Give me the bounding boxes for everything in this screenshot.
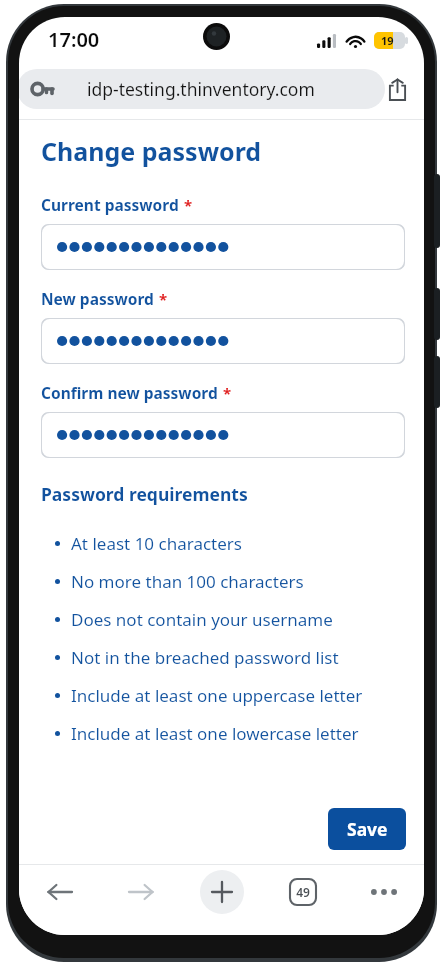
staticText: Change password	[41, 134, 262, 168]
staticText: *	[159, 289, 168, 309]
button[interactable]	[41, 224, 405, 270]
staticText: 17:00	[48, 26, 100, 53]
button[interactable]: New tab	[181, 866, 262, 918]
staticText: Does not contain your username	[71, 608, 333, 631]
button[interactable]: More	[343, 866, 424, 918]
staticText: *	[223, 383, 232, 403]
button[interactable]	[41, 318, 405, 364]
button[interactable]: Tabs	[262, 866, 343, 918]
button[interactable]: Back	[19, 866, 100, 918]
button[interactable]: Share	[379, 69, 416, 109]
staticText: *	[184, 195, 193, 215]
staticText: Confirm new password	[41, 382, 218, 403]
staticText: idp-testing.thinventory.com	[87, 77, 315, 101]
staticText: New password	[41, 288, 154, 309]
button[interactable]: Forward	[100, 866, 181, 918]
staticText: Save	[347, 817, 388, 841]
staticText: Password requirements	[41, 482, 248, 506]
button[interactable]: Save	[328, 808, 406, 850]
staticText: No more than 100 characters	[71, 570, 304, 593]
button[interactable]: idp-testing.thinventory.com	[19, 69, 385, 109]
button[interactable]	[41, 412, 405, 458]
staticText: 49	[296, 884, 310, 900]
staticText: 19	[381, 33, 394, 48]
staticText: Not in the breached password list	[71, 646, 339, 669]
staticText: At least 10 characters	[71, 532, 242, 555]
staticText: Include at least one uppercase letter	[71, 684, 363, 707]
staticText: Current password	[41, 194, 179, 215]
staticText: Include at least one lowercase letter	[71, 722, 359, 745]
